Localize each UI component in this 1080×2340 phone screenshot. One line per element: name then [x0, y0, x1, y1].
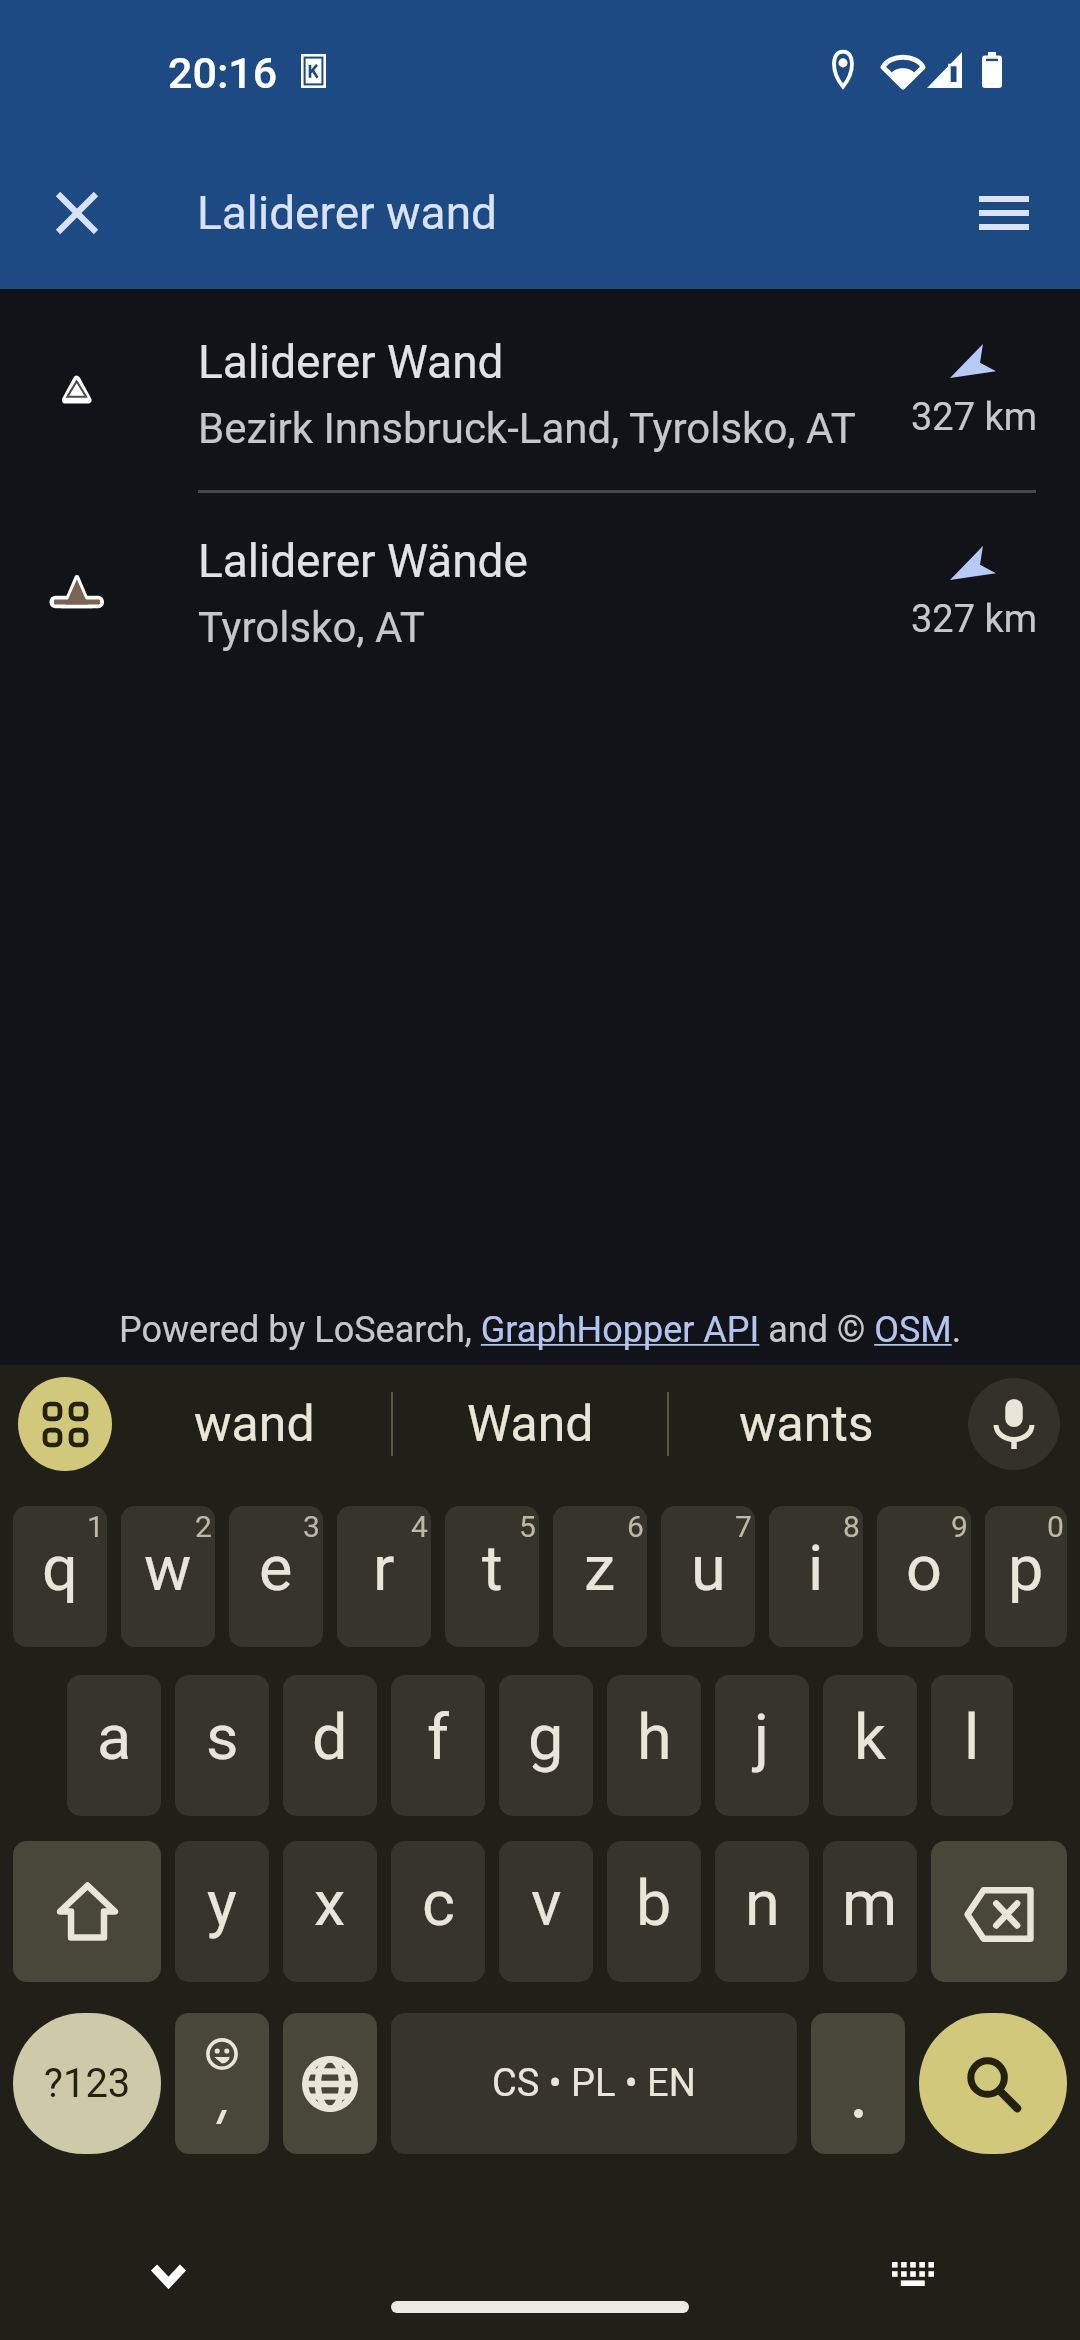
- staticText: t: [482, 1532, 503, 1606]
- button[interactable]: h: [607, 1675, 701, 1816]
- staticText: e: [259, 1532, 293, 1606]
- button[interactable]: d: [283, 1675, 377, 1816]
- button[interactable]: Laliderer Wand: [0, 289, 1080, 491]
- button[interactable]: m: [823, 1841, 917, 1982]
- button[interactable]: e: [229, 1506, 323, 1647]
- staticText: Laliderer Wand: [198, 335, 504, 389]
- staticText: w: [144, 1532, 192, 1606]
- button[interactable]: Change language: [283, 2013, 377, 2154]
- button[interactable]: b: [607, 1841, 701, 1982]
- staticText: 0: [1047, 1509, 1064, 1544]
- staticText: 1: [87, 1509, 104, 1544]
- staticText: l: [964, 1701, 980, 1775]
- staticText: m: [842, 1867, 898, 1941]
- staticText: 8: [843, 1509, 860, 1544]
- staticText: n: [745, 1867, 780, 1941]
- button[interactable]: c: [391, 1841, 485, 1982]
- staticText: 327 km: [911, 597, 1038, 642]
- staticText: k: [854, 1701, 886, 1775]
- staticText: x: [314, 1867, 346, 1941]
- staticText: 5: [519, 1509, 536, 1544]
- staticText: 6: [627, 1509, 644, 1544]
- staticText: Laliderer Wände: [198, 534, 528, 588]
- button[interactable]: CS • PL • EN: [391, 2013, 797, 2154]
- staticText: g: [528, 1701, 564, 1775]
- staticText: wand: [194, 1395, 315, 1454]
- staticText: ?123: [44, 2060, 131, 2107]
- button[interactable]: g: [499, 1675, 593, 1816]
- staticText: y: [207, 1867, 237, 1941]
- button[interactable]: k: [823, 1675, 917, 1816]
- button[interactable]: p: [985, 1506, 1067, 1647]
- button[interactable]: o: [877, 1506, 971, 1647]
- button[interactable]: t: [445, 1506, 539, 1647]
- staticText: d: [312, 1701, 348, 1775]
- staticText: Wand: [467, 1395, 594, 1454]
- staticText: h: [637, 1701, 672, 1775]
- button[interactable]: x: [283, 1841, 377, 1982]
- staticText: p: [1008, 1532, 1044, 1606]
- staticText: 3: [303, 1509, 320, 1544]
- button[interactable]: wants: [669, 1365, 943, 1483]
- button[interactable]: f: [391, 1675, 485, 1816]
- button[interactable]: Backspace: [931, 1841, 1067, 1982]
- button[interactable]: Hide keyboard: [120, 2222, 216, 2318]
- staticText: Laliderer wand: [197, 186, 497, 240]
- button[interactable]: Laliderer Wände: [0, 491, 1080, 693]
- staticText: 327 km: [911, 395, 1038, 440]
- staticText: q: [42, 1532, 78, 1606]
- button[interactable]: y: [175, 1841, 269, 1982]
- button[interactable]: w: [121, 1506, 215, 1647]
- staticText: b: [636, 1867, 672, 1941]
- button[interactable]: Emoji: [175, 2013, 269, 2154]
- button[interactable]: Voice input: [968, 1378, 1060, 1470]
- staticText: 20:16: [168, 48, 278, 98]
- staticText: CS • PL • EN: [492, 2061, 696, 2106]
- staticText: 7: [735, 1509, 752, 1544]
- staticText: Powered by LoSearch, GraphHopper API and…: [119, 1309, 962, 1351]
- button[interactable]: r: [337, 1506, 431, 1647]
- button[interactable]: Wand: [393, 1365, 667, 1483]
- button[interactable]: Close search: [10, 140, 144, 289]
- button[interactable]: Keyboard options: [18, 1377, 112, 1471]
- staticText: 9: [951, 1509, 968, 1544]
- button[interactable]: Search: [919, 2013, 1067, 2154]
- button[interactable]: Period: [811, 2013, 905, 2154]
- button[interactable]: n: [715, 1841, 809, 1982]
- button[interactable]: Switch keyboard: [892, 2262, 934, 2287]
- button[interactable]: z: [553, 1506, 647, 1647]
- button[interactable]: wand: [118, 1365, 391, 1483]
- staticText: o: [906, 1532, 942, 1606]
- staticText: Tyrolsko, AT: [198, 603, 425, 652]
- staticText: j: [754, 1701, 770, 1775]
- staticText: 4: [411, 1509, 428, 1544]
- staticText: r: [373, 1532, 395, 1606]
- button[interactable]: u: [661, 1506, 755, 1647]
- staticText: 2: [195, 1509, 212, 1544]
- staticText: s: [206, 1701, 239, 1775]
- button[interactable]: l: [931, 1675, 1013, 1816]
- staticText: f: [427, 1701, 449, 1775]
- staticText: i: [808, 1532, 824, 1606]
- button[interactable]: i: [769, 1506, 863, 1647]
- staticText: wants: [739, 1395, 874, 1454]
- button[interactable]: Shift: [13, 1841, 161, 1982]
- button[interactable]: s: [175, 1675, 269, 1816]
- staticText: u: [691, 1532, 726, 1606]
- staticText: a: [97, 1701, 132, 1775]
- staticText: c: [422, 1867, 455, 1941]
- button[interactable]: ?123: [13, 2013, 161, 2154]
- staticText: v: [531, 1867, 562, 1941]
- button[interactable]: a: [67, 1675, 161, 1816]
- staticText: z: [584, 1532, 616, 1606]
- button[interactable]: j: [715, 1675, 809, 1816]
- button[interactable]: v: [499, 1841, 593, 1982]
- button[interactable]: Menu: [937, 140, 1071, 289]
- staticText: Bezirk Innsbruck-Land, Tyrolsko, AT: [198, 404, 856, 453]
- button[interactable]: q: [13, 1506, 107, 1647]
